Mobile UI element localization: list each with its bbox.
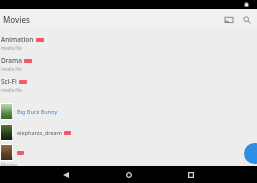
button[interactable]: Back xyxy=(58,167,74,183)
button[interactable]: Search xyxy=(239,12,254,27)
staticText: Big Buck Bunny xyxy=(17,108,58,115)
staticText: Sci-Fi xyxy=(1,77,17,86)
staticText: media file xyxy=(1,66,22,72)
button[interactable]: Home xyxy=(121,167,137,183)
button[interactable] xyxy=(0,144,241,161)
staticText: Movies xyxy=(3,14,30,25)
staticText: elephants_dream xyxy=(17,129,62,136)
button[interactable]: Sci-Fi xyxy=(0,75,241,96)
button[interactable]: Recents xyxy=(183,167,199,183)
button[interactable]: Animation xyxy=(0,33,241,54)
button[interactable]: elephants_dream xyxy=(0,124,241,141)
button[interactable]: Drama xyxy=(0,54,241,75)
button[interactable]: Cast xyxy=(221,12,236,27)
staticText: media file xyxy=(1,87,22,93)
button[interactable]: Big Buck Bunny xyxy=(0,103,241,120)
staticText: media file xyxy=(1,45,22,51)
staticText: Animation xyxy=(1,35,34,44)
button[interactable]: Add xyxy=(244,143,257,164)
staticText: Movies xyxy=(1,162,18,166)
staticText: Drama xyxy=(1,56,22,65)
